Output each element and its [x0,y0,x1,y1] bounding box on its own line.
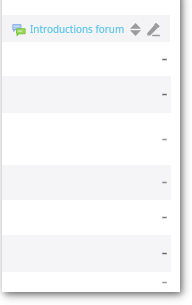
button[interactable]: Sort [129,19,142,39]
button[interactable] [2,200,180,235]
staticText: Introductions forum [30,22,125,35]
button[interactable] [2,235,180,272]
button[interactable]: Edit [145,19,161,39]
button[interactable] [2,272,180,292]
button[interactable] [2,165,180,200]
button[interactable] [2,76,180,113]
button[interactable] [2,42,180,76]
